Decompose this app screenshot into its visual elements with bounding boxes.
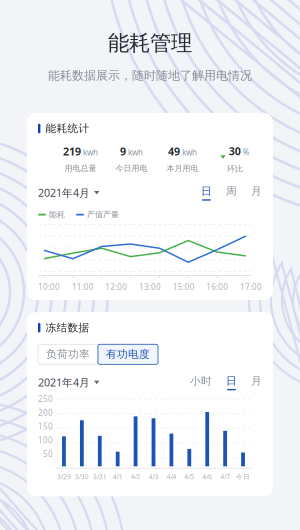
staticText: 3/31 — [93, 472, 107, 481]
staticText: 30 — [229, 144, 241, 158]
staticText: % — [243, 147, 250, 157]
staticText: 4/7 — [220, 472, 230, 481]
staticText: 15:00 — [173, 281, 195, 292]
staticText: 10:00 — [38, 281, 60, 292]
staticText: 16:00 — [206, 281, 228, 292]
staticText: 环比 — [227, 164, 243, 174]
staticText: 200 — [38, 407, 53, 418]
button[interactable]: 月 — [251, 374, 262, 390]
staticText: 日 — [201, 185, 212, 198]
staticText: kwh — [128, 147, 143, 158]
staticText: 月 — [251, 185, 262, 198]
staticText: 150 — [38, 421, 53, 432]
button[interactable]: 小时 — [190, 374, 212, 390]
staticText: 4/6 — [202, 472, 212, 481]
button[interactable]: 2021年4月 — [38, 186, 99, 200]
staticText: 2021年4月 — [38, 375, 90, 389]
staticText: 100 — [38, 435, 53, 445]
staticText: 4/4 — [166, 472, 176, 481]
staticText: 13:00 — [139, 281, 161, 292]
staticText: 周 — [226, 185, 237, 198]
staticText: 9 — [120, 144, 126, 159]
staticText: 50 — [43, 448, 53, 459]
button[interactable]: 2021年4月 — [38, 375, 99, 389]
staticText: 3/30 — [75, 472, 89, 481]
staticText: 今日用电 — [115, 163, 147, 173]
staticText: 能耗 — [49, 210, 65, 219]
staticText: 250 — [38, 393, 53, 404]
staticText: kwh — [182, 147, 197, 158]
staticText: 日 — [226, 374, 237, 387]
staticText: 4/3 — [148, 472, 158, 481]
staticText: 4/5 — [184, 472, 194, 481]
staticText: 4/1 — [113, 472, 123, 481]
staticText: 219 — [63, 144, 81, 159]
staticText: 产值产量 — [87, 210, 119, 219]
staticText: 月 — [251, 374, 262, 387]
staticText: 4/2 — [131, 472, 141, 481]
button[interactable]: 日 — [201, 185, 212, 201]
staticText: 能耗数据展示，随时随地了解用电情况 — [48, 68, 252, 83]
button[interactable]: 负荷功率 — [38, 344, 98, 364]
button[interactable]: 有功电度 — [98, 344, 158, 364]
staticText: kwh — [83, 147, 98, 158]
staticText: 49 — [168, 144, 180, 159]
staticText: 2021年4月 — [38, 186, 90, 200]
staticText: 冻结数据 — [45, 321, 89, 334]
staticText: 小时 — [190, 374, 212, 387]
staticText: 今日 — [236, 473, 250, 481]
staticText: 能耗管理 — [108, 30, 192, 56]
staticText: 本月用电 — [166, 163, 198, 173]
staticText: 12:00 — [105, 281, 127, 292]
staticText: 用电总量 — [64, 163, 96, 173]
staticText: 11:00 — [72, 281, 94, 292]
button[interactable]: 月 — [251, 185, 262, 201]
staticText: 负荷功率 — [46, 348, 90, 361]
staticText: 有功电度 — [106, 348, 150, 361]
staticText: 17:00 — [240, 281, 262, 292]
staticText: 3/29 — [57, 472, 71, 481]
button[interactable]: 周 — [226, 185, 237, 201]
staticText: 能耗统计 — [45, 122, 89, 135]
button[interactable]: 日 — [226, 374, 237, 390]
